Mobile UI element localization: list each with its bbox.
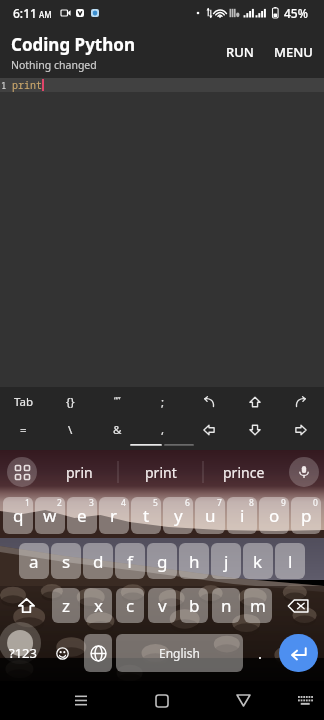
staticText: 6 [185, 497, 190, 509]
staticText: English [159, 645, 200, 661]
button[interactable]: r [99, 497, 129, 534]
staticText: ; [161, 394, 165, 410]
button[interactable]: print [119, 450, 203, 494]
button[interactable]: b [180, 588, 208, 623]
button[interactable]: s [51, 543, 81, 579]
button[interactable]: right [278, 416, 324, 443]
button[interactable]: a [19, 543, 49, 579]
button[interactable]: g [147, 543, 177, 579]
button[interactable]: u [195, 497, 225, 534]
button[interactable]: prin [40, 450, 118, 494]
staticText: AM [39, 9, 52, 20]
button[interactable]: w [35, 497, 65, 534]
button[interactable]: Menu [61, 681, 101, 720]
staticText: print [12, 78, 42, 92]
button[interactable]: redo [278, 387, 324, 416]
staticText: q [13, 504, 24, 527]
button[interactable]: m [244, 588, 272, 623]
button[interactable]: Back [223, 681, 263, 720]
staticText: s [62, 550, 71, 573]
button[interactable]: j [211, 543, 241, 579]
staticText: \ [68, 422, 73, 438]
staticText: j [224, 550, 229, 573]
staticText: g [157, 550, 168, 573]
staticText: k [253, 550, 263, 573]
staticText: 5 [153, 497, 158, 509]
button[interactable]: ; [140, 387, 186, 416]
button[interactable]: o [259, 497, 289, 534]
staticText: “” [114, 394, 121, 406]
staticText: 4 [121, 497, 126, 509]
button[interactable]: Shift [2, 588, 50, 623]
staticText: 0 [313, 497, 318, 509]
button[interactable]: Backspace [274, 588, 322, 623]
staticText: i [240, 504, 245, 527]
button[interactable]: v [148, 588, 176, 623]
staticText: x [94, 594, 103, 617]
staticText: & [113, 422, 122, 438]
button[interactable]: t [131, 497, 161, 534]
button[interactable]: {} [47, 387, 94, 416]
button[interactable]: , [140, 416, 186, 443]
button[interactable]: h [179, 543, 209, 579]
staticText: y [174, 504, 183, 527]
button[interactable]: c [116, 588, 144, 623]
button[interactable]: ?123 [0, 634, 46, 672]
staticText: m [250, 594, 266, 617]
button[interactable]: n [212, 588, 240, 623]
staticText: c [126, 594, 135, 617]
button[interactable]: left [186, 416, 232, 443]
staticText: f [127, 550, 133, 573]
button[interactable]: undo [186, 387, 232, 416]
button[interactable]: down [232, 416, 278, 443]
button[interactable]: x [84, 588, 112, 623]
staticText: {} [66, 394, 75, 410]
button[interactable]: Change language [84, 634, 112, 672]
button[interactable]: p [291, 497, 321, 534]
staticText: h [189, 550, 200, 573]
staticText: = [20, 422, 27, 438]
staticText: . [258, 643, 263, 663]
button[interactable]: d [83, 543, 113, 579]
staticText: d [93, 550, 104, 573]
button[interactable]: f [115, 543, 145, 579]
button[interactable]: e [67, 497, 97, 534]
staticText: 9 [281, 497, 286, 509]
button[interactable]: English [116, 634, 243, 672]
staticText: prince [223, 463, 265, 482]
button[interactable]: Home [142, 681, 182, 720]
button[interactable]: z [52, 588, 80, 623]
button[interactable]: Emoji [46, 634, 78, 672]
button[interactable]: prince [204, 450, 284, 494]
button[interactable]: RUN [216, 33, 264, 71]
button[interactable]: \ [47, 416, 94, 443]
staticText: print [145, 463, 177, 482]
button[interactable]: Enter [279, 634, 318, 672]
button[interactable]: Apps [7, 457, 37, 487]
staticText: o [269, 504, 280, 527]
button[interactable]: q [3, 497, 33, 534]
button[interactable]: Keyboard [286, 681, 324, 720]
button[interactable]: y [163, 497, 193, 534]
staticText: MENU [274, 43, 313, 61]
button[interactable]: l [275, 543, 305, 579]
button[interactable]: MENU [264, 33, 324, 71]
button[interactable]: “” [94, 387, 140, 416]
staticText: 8 [249, 497, 254, 509]
staticText: Nothing changed [11, 58, 97, 72]
button[interactable]: Tab [0, 387, 47, 416]
staticText: p [301, 504, 312, 527]
staticText: 6:11 [13, 5, 37, 21]
button[interactable]: up [232, 387, 278, 416]
button[interactable]: i [227, 497, 257, 534]
button[interactable]: = [0, 416, 47, 443]
staticText: RUN [226, 43, 254, 61]
staticText: w [43, 504, 57, 527]
staticText: 1 [25, 497, 30, 509]
staticText: v [158, 594, 167, 617]
staticText: prin [66, 463, 93, 482]
button[interactable]: k [243, 543, 273, 579]
button[interactable]: Voice input [289, 457, 319, 487]
button[interactable]: . [245, 634, 275, 672]
button[interactable]: & [94, 416, 140, 443]
